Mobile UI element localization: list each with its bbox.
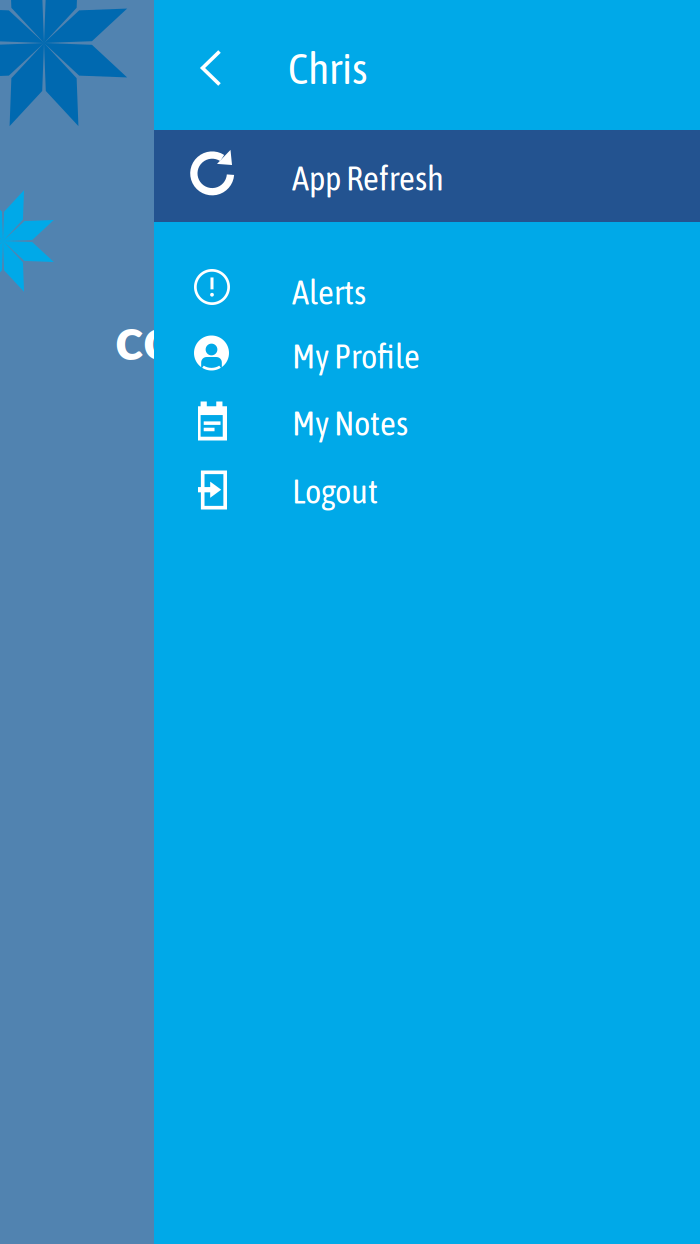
button[interactable]: Alerts xyxy=(154,255,700,319)
staticText: My Profile xyxy=(292,336,420,376)
staticText: App Refresh xyxy=(292,158,444,198)
button[interactable]: My Notes xyxy=(154,385,700,453)
button[interactable]: App Refresh xyxy=(154,130,700,222)
button[interactable]: My Profile xyxy=(154,319,700,385)
staticText: Chris xyxy=(288,43,368,93)
button[interactable]: Back xyxy=(181,35,241,101)
staticText: My Notes xyxy=(292,403,408,443)
button[interactable]: Logout xyxy=(154,453,700,521)
staticText: Logout xyxy=(292,471,378,511)
staticText: Alerts xyxy=(292,272,366,312)
staticText: co xyxy=(115,302,177,372)
